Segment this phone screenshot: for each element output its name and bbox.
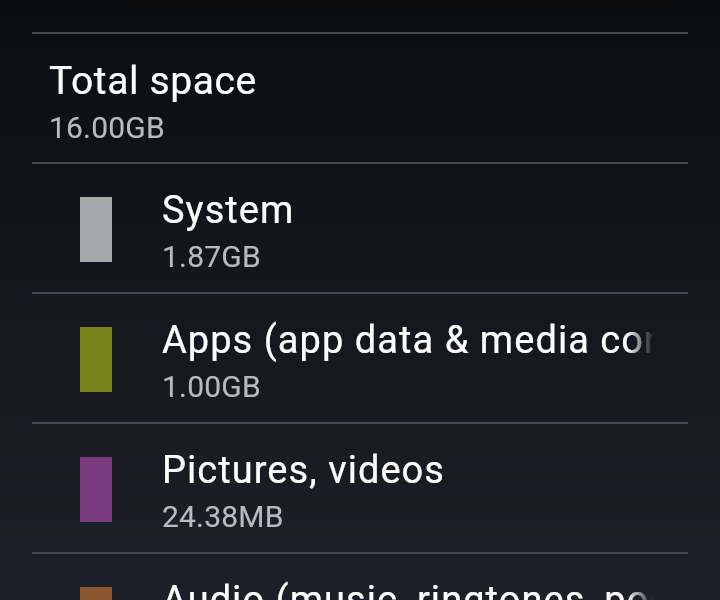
staticText: Pictures, videos xyxy=(162,448,445,493)
staticText: 24.38MB xyxy=(162,499,284,534)
button[interactable]: System colour key xyxy=(0,164,720,294)
staticText: 1.00GB xyxy=(162,369,261,404)
button[interactable]: Total space xyxy=(0,34,720,164)
staticText: 16.00GB xyxy=(49,110,165,145)
button[interactable]: Pictures, videos colour key xyxy=(0,424,720,554)
staticText: System xyxy=(162,188,295,233)
staticText: Total space xyxy=(49,58,257,104)
button[interactable]: Audio (music, ringtones, podcasts, etc.)… xyxy=(0,554,720,600)
staticText: Audio (music, ringtones, podcasts, etc.) xyxy=(162,578,654,600)
button[interactable]: Apps (app data & media content) colour k… xyxy=(0,294,720,424)
staticText: Apps (app data & media content) xyxy=(162,318,654,363)
staticText: 1.87GB xyxy=(162,239,261,274)
